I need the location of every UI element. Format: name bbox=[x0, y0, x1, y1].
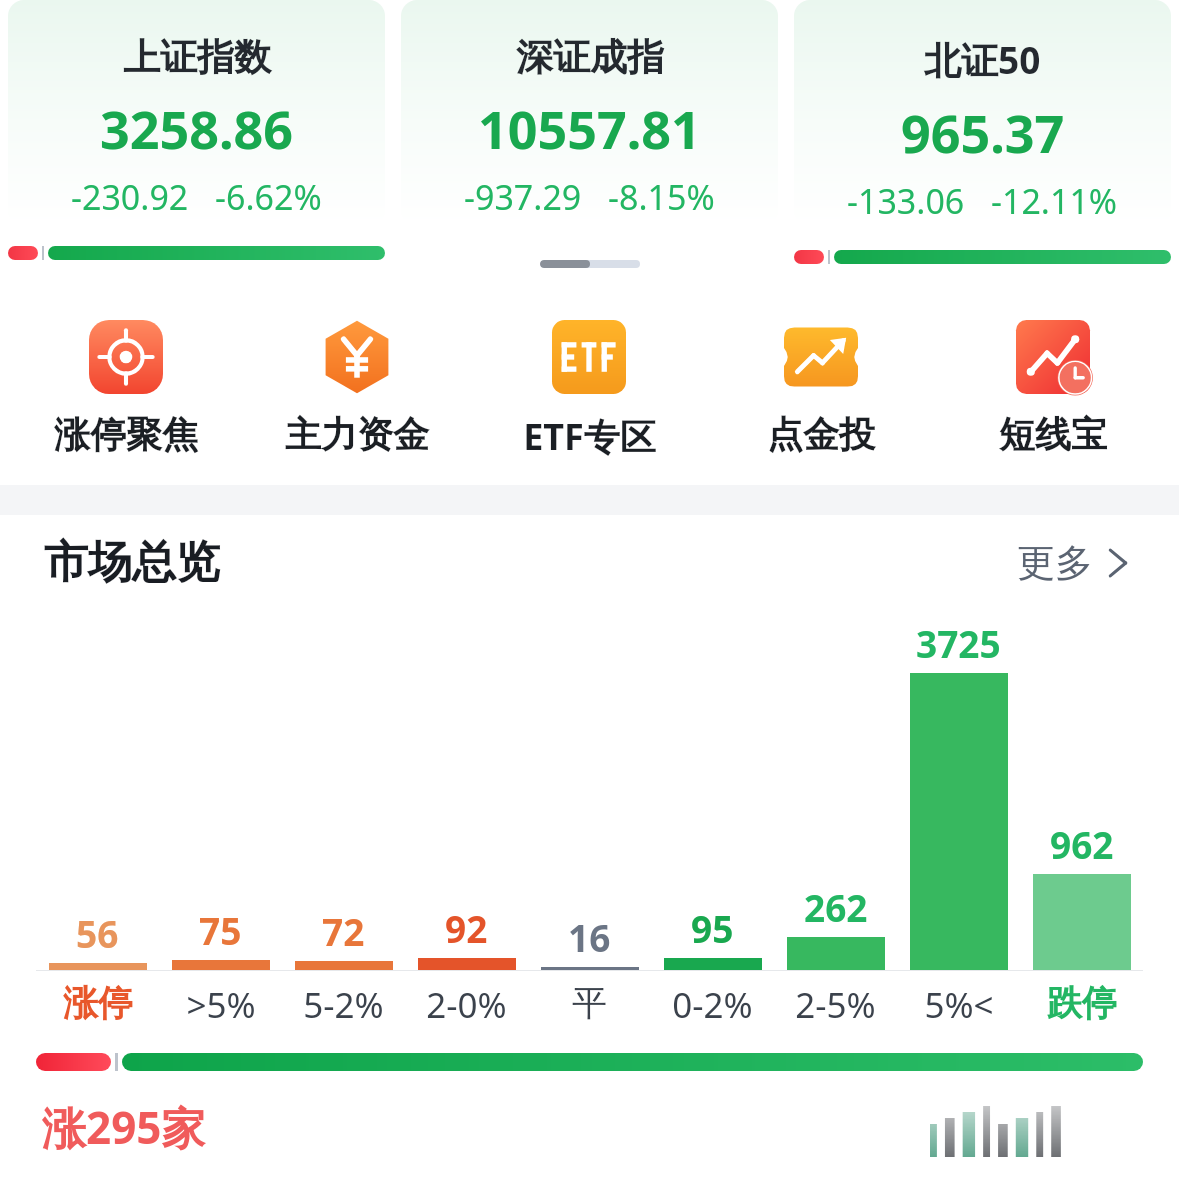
button[interactable]: 更多 bbox=[1011, 533, 1135, 593]
staticText: 短线宝 bbox=[999, 412, 1107, 457]
staticText: 10557.81 bbox=[478, 93, 701, 164]
staticText: 2-5% bbox=[795, 981, 876, 1029]
staticText: 北证50 bbox=[924, 34, 1041, 85]
button[interactable]: 深证成指 bbox=[401, 0, 778, 270]
staticText: 72 bbox=[322, 906, 365, 956]
staticText: -8.15% bbox=[608, 174, 715, 220]
staticText: 深证成指 bbox=[516, 34, 664, 81]
staticText: 965.37 bbox=[901, 97, 1065, 168]
button[interactable]: 3725 bbox=[897, 618, 1020, 970]
staticText: ETF专区 bbox=[523, 412, 656, 461]
button[interactable]: 95 bbox=[651, 903, 774, 970]
staticText: 5-2% bbox=[303, 981, 384, 1029]
staticText: 0-2% bbox=[672, 981, 753, 1029]
button[interactable]: 北证50 bbox=[794, 0, 1171, 270]
staticText: -230.92 bbox=[71, 174, 189, 220]
button[interactable]: 上证指数 bbox=[8, 0, 385, 270]
staticText: 跌停 bbox=[1047, 981, 1117, 1025]
button[interactable]: 56 bbox=[36, 908, 159, 970]
staticText: 上证指数 bbox=[123, 34, 271, 81]
staticText: 3725 bbox=[916, 618, 1001, 668]
button[interactable]: 16 bbox=[528, 912, 651, 970]
staticText: 更多 bbox=[1017, 539, 1093, 587]
staticText: -6.62% bbox=[215, 174, 322, 220]
staticText: 平 bbox=[572, 981, 607, 1025]
staticText: 涨295家 bbox=[42, 1097, 206, 1157]
staticText: 16 bbox=[568, 912, 611, 962]
staticText: 95 bbox=[691, 903, 734, 953]
button[interactable]: 主力资金 bbox=[241, 316, 473, 461]
button[interactable]: 涨停聚焦 bbox=[10, 316, 241, 461]
staticText: -133.06 bbox=[847, 178, 965, 224]
button[interactable]: 262 bbox=[774, 882, 897, 970]
staticText: 262 bbox=[804, 882, 868, 932]
button[interactable]: 点金投 bbox=[705, 316, 937, 461]
staticText: 92 bbox=[445, 903, 488, 953]
staticText: 5%< bbox=[924, 981, 994, 1029]
staticText: 3258.86 bbox=[100, 93, 294, 164]
staticText: 涨停聚焦 bbox=[54, 412, 198, 457]
staticText: 56 bbox=[76, 908, 119, 958]
staticText: 75 bbox=[199, 905, 242, 955]
button[interactable]: 72 bbox=[282, 906, 405, 970]
staticText: -937.29 bbox=[464, 174, 582, 220]
button[interactable]: 短线宝 bbox=[937, 316, 1169, 461]
staticText: -12.11% bbox=[991, 178, 1118, 224]
button[interactable]: 75 bbox=[159, 905, 282, 970]
staticText: 点金投 bbox=[767, 412, 875, 457]
button[interactable]: ETF专区 bbox=[473, 316, 705, 465]
staticText: 2-0% bbox=[426, 981, 507, 1029]
button[interactable]: 92 bbox=[405, 903, 528, 970]
staticText: 市场总览 bbox=[44, 535, 220, 590]
staticText: 962 bbox=[1050, 819, 1114, 869]
staticText: >5% bbox=[186, 981, 256, 1029]
button[interactable]: 962 bbox=[1020, 819, 1143, 970]
staticText: 涨停 bbox=[63, 981, 133, 1025]
staticText: 主力资金 bbox=[285, 412, 429, 457]
